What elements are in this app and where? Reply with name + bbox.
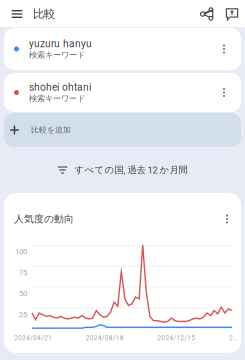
staticText: 検索キーワード bbox=[29, 50, 85, 60]
button[interactable]: Share bbox=[194, 0, 220, 28]
button[interactable]: Send feedback bbox=[220, 0, 244, 28]
staticText: 100 bbox=[15, 247, 27, 256]
staticText: 75 bbox=[19, 268, 27, 277]
staticText: 2024/04/21 bbox=[14, 334, 52, 342]
staticText: 人気度の動向 bbox=[14, 213, 74, 225]
staticText: 比較を追加 bbox=[31, 125, 71, 135]
staticText: 2… bbox=[229, 334, 237, 342]
button[interactable]: shohei ohtani bbox=[4, 73, 241, 112]
staticText: 25 bbox=[19, 310, 27, 319]
staticText: yuzuru hanyu bbox=[29, 38, 92, 50]
staticText: すべての国, 過去 12 か月間 bbox=[74, 164, 187, 176]
button[interactable]: Chart options bbox=[218, 208, 236, 230]
button[interactable]: 比較を追加 bbox=[4, 113, 241, 147]
staticText: 50 bbox=[19, 289, 27, 298]
staticText: 検索キーワード bbox=[29, 93, 85, 104]
staticText: shohei ohtani bbox=[29, 81, 91, 93]
staticText: 比較 bbox=[33, 7, 55, 21]
button[interactable]: すべての国, 過去 12 か月間 bbox=[4, 147, 241, 193]
button[interactable]: More options bbox=[213, 81, 235, 103]
button[interactable]: yuzuru hanyu bbox=[4, 28, 241, 70]
staticText: 2024/08/18 bbox=[86, 334, 124, 342]
button[interactable]: Menu bbox=[3, 0, 31, 28]
button[interactable]: More options bbox=[213, 38, 235, 60]
staticText: 2024/12/15 bbox=[157, 334, 195, 342]
